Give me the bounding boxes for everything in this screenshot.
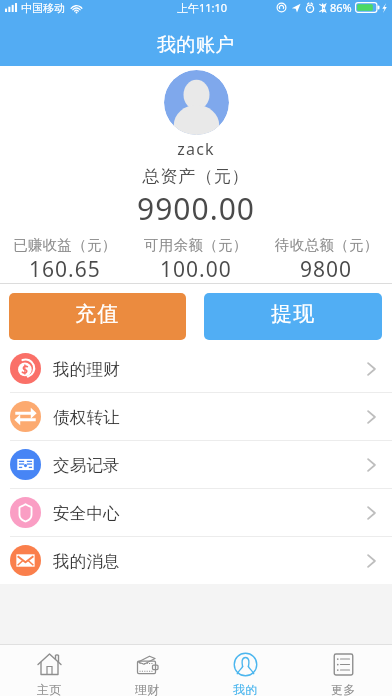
other: More [331, 652, 356, 677]
staticText: 160.65 [29, 255, 101, 284]
button[interactable]: 提现 [204, 293, 382, 340]
button[interactable]: 我的消息 [0, 537, 392, 584]
staticText: 交易记录 [53, 455, 120, 476]
staticText: 我的理财 [53, 359, 120, 380]
button[interactable]: 安全中心 [0, 489, 392, 537]
staticText: 充值 [75, 301, 120, 327]
button[interactable]: 我的理财 [0, 345, 392, 393]
staticText: 总资产（元） [0, 166, 392, 187]
staticText: 我的账户 [157, 33, 235, 57]
button[interactable]: 交易记录 [0, 441, 392, 489]
staticText: zack [0, 138, 392, 160]
staticText: 已赚收益（元） [13, 236, 117, 254]
button[interactable]: Finance [98, 645, 196, 696]
other: Profile [233, 652, 258, 677]
staticText: 我的 [233, 682, 258, 696]
other: Home [37, 652, 62, 677]
staticText: 100.00 [160, 255, 232, 284]
staticText: 86% [330, 0, 352, 15]
staticText: 提现 [271, 301, 316, 327]
button[interactable]: Profile [196, 645, 294, 696]
staticText: 更多 [331, 682, 356, 696]
staticText: 中国移动 [21, 1, 65, 15]
staticText: 主页 [37, 682, 62, 696]
staticText: 待收总额（元） [275, 236, 379, 254]
button[interactable]: Home [0, 645, 98, 696]
button[interactable]: 债权转让 [0, 393, 392, 441]
staticText: 债权转让 [53, 407, 120, 428]
staticText: 9800 [300, 255, 353, 284]
staticText: 理财 [135, 682, 160, 696]
staticText: 我的消息 [53, 551, 120, 572]
staticText: 上午11:10 [177, 0, 228, 15]
other: Finance [135, 652, 160, 677]
staticText: 安全中心 [53, 503, 120, 524]
staticText: 可用余额（元） [144, 236, 248, 254]
staticText: 9900.00 [0, 188, 392, 229]
button[interactable]: 充值 [9, 293, 186, 340]
button[interactable]: More [294, 645, 392, 696]
